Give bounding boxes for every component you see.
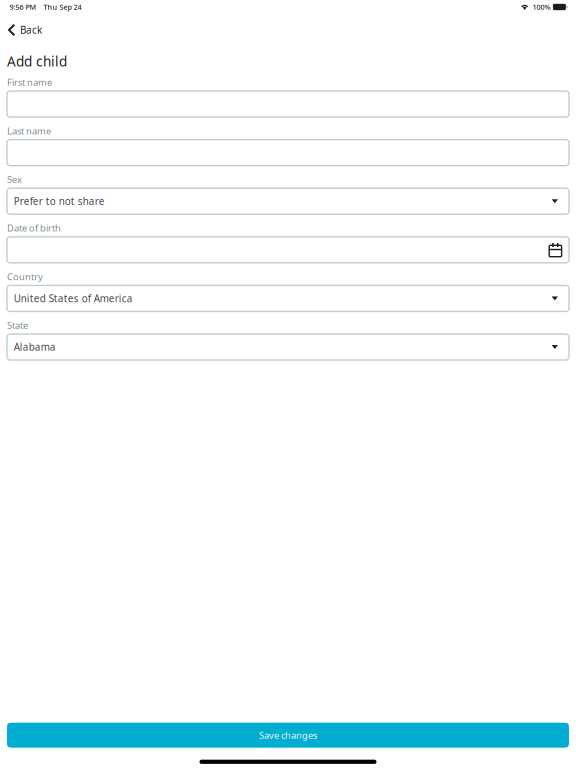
button[interactable]: Save changes <box>7 723 569 748</box>
staticText: Last name <box>7 124 51 137</box>
staticText: Country <box>7 270 43 283</box>
staticText: First name <box>7 76 52 88</box>
staticText: 9:56 PM <box>9 2 36 12</box>
staticText: 100% <box>532 2 550 12</box>
staticText: Date of birth <box>7 222 61 234</box>
staticText: Back <box>20 23 42 37</box>
button[interactable]: First name <box>7 91 569 117</box>
staticText: Sex <box>7 173 22 186</box>
button[interactable]: Sex <box>7 188 569 214</box>
staticText: Thu Sep 24 <box>43 2 81 12</box>
staticText: Prefer to not share <box>14 194 105 208</box>
staticText: State <box>7 319 28 331</box>
button[interactable]: Back <box>0 19 576 41</box>
button[interactable]: Date of birth <box>7 237 569 263</box>
button[interactable]: Country <box>7 285 569 311</box>
button[interactable]: State <box>7 334 569 360</box>
staticText: Add child <box>7 52 67 70</box>
button[interactable]: Last name <box>7 140 569 166</box>
staticText: Alabama <box>14 340 56 354</box>
staticText: Save changes <box>259 729 317 741</box>
staticText: United States of America <box>14 292 133 305</box>
